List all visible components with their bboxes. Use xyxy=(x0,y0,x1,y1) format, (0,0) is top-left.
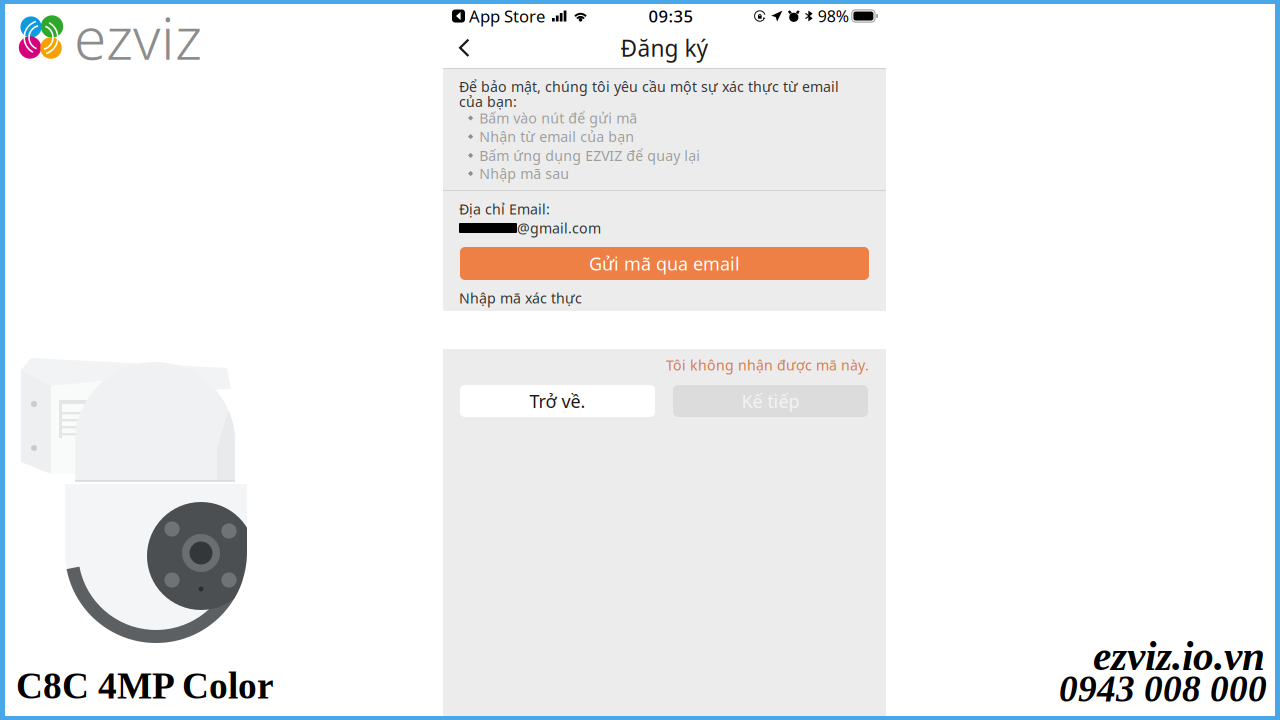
staticText: Đăng ký xyxy=(620,33,708,63)
staticText: 98% xyxy=(818,5,849,27)
staticText: Bấm vào nút để gửi mã xyxy=(479,108,637,128)
staticText: Bấm ứng dụng EZVIZ để quay lại xyxy=(479,146,700,165)
staticText: Để bảo mật, chúng tôi yêu cầu một sự xác… xyxy=(459,77,839,96)
staticText: Tôi không nhận được mã này. xyxy=(666,355,869,375)
button[interactable]: Gửi mã qua email xyxy=(460,247,869,280)
staticText: 0943 008 000 xyxy=(1059,668,1267,710)
button[interactable]: Back xyxy=(443,29,485,67)
staticText: C8C 4MP Color xyxy=(16,665,274,707)
staticText: App Store xyxy=(465,5,545,27)
staticText: của bạn: xyxy=(459,92,517,111)
staticText: ezviz xyxy=(74,0,202,77)
button[interactable]: Kế tiếp xyxy=(673,385,868,417)
staticText: @gmail.com xyxy=(517,218,601,238)
staticText: Gửi mã qua email xyxy=(589,251,740,276)
button[interactable]: Trở về. xyxy=(460,385,655,417)
button[interactable]: Tôi không nhận được mã này. xyxy=(664,353,871,377)
staticText: Nhận từ email của bạn xyxy=(479,127,634,146)
staticText: Địa chỉ Email: xyxy=(459,199,550,219)
staticText: ezviz.io.vn xyxy=(1093,633,1265,679)
staticText: Nhập mã xác thực xyxy=(459,288,582,308)
staticText: Nhập mã sau xyxy=(479,164,569,183)
staticText: Trở về. xyxy=(529,389,585,413)
staticText: 09:35 xyxy=(648,5,693,27)
staticText: Kế tiếp xyxy=(741,389,799,413)
